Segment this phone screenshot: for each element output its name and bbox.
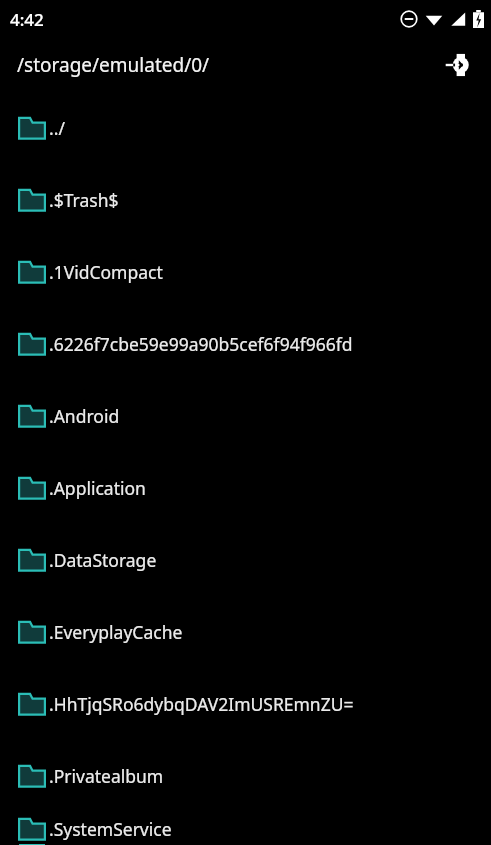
button[interactable]: .1VidCompact [0,236,491,308]
button[interactable]: .Android [0,380,491,452]
staticText: .6226f7cbe59e99a90b5cef6f94f966fd [49,332,353,356]
staticText: .Application [49,476,146,500]
staticText: .Privatealbum [49,764,164,788]
button[interactable]: ../ [0,92,491,164]
button[interactable]: .$Trash$ [0,164,491,236]
button[interactable]: .HhTjqSRo6dybqDAV2ImUSREmnZU= [0,668,491,740]
button[interactable]: .Application [0,452,491,524]
staticText: .HhTjqSRo6dybqDAV2ImUSREmnZU= [49,692,354,716]
staticText: /storage/emulated/0/ [17,52,210,78]
staticText: .1VidCompact [49,260,163,284]
staticText: ../ [49,116,65,140]
button[interactable]: .6226f7cbe59e99a90b5cef6f94f966fd [0,308,491,380]
staticText: 4:42 [10,8,44,31]
staticText: .SystemService [49,817,172,841]
button[interactable]: .EveryplayCache [0,596,491,668]
staticText: .DataStorage [49,548,157,572]
button[interactable]: Send to watch [437,44,479,86]
button[interactable]: .SystemService [0,812,491,845]
staticText: .EveryplayCache [49,620,183,644]
staticText: .$Trash$ [49,188,119,212]
staticText: .Android [49,404,120,428]
button[interactable]: .Privatealbum [0,740,491,812]
button[interactable]: .DataStorage [0,524,491,596]
